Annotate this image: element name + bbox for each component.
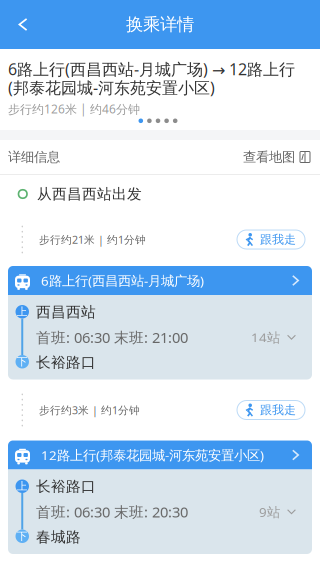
staticText: 12路上行(邦泰花园城-河东苑安置小区) — [41, 446, 264, 464]
button[interactable]: 14站 — [251, 328, 312, 346]
staticText: 步行约126米 | 约46分钟 — [8, 101, 140, 117]
staticText: 跟我走 — [260, 232, 296, 247]
button[interactable]: 跟我走 — [237, 400, 305, 419]
staticText: 6路上行(西昌西站-月城广场) — [41, 272, 204, 289]
staticText: 下 — [17, 355, 28, 368]
button[interactable]: 12路上行(邦泰花园城-河东苑安置小区) — [8, 440, 312, 469]
staticText: 跟我走 — [260, 403, 296, 417]
button[interactable]: 跟我走 — [237, 230, 305, 249]
button[interactable]: 查看地图 — [243, 149, 320, 165]
staticText: 详细信息 — [8, 149, 60, 165]
staticText: 步行约3米 | 约1分钟 — [39, 403, 140, 417]
button[interactable]: 9站 — [259, 503, 312, 521]
staticText: 上 — [17, 480, 28, 493]
staticText: 西昌西站 — [36, 303, 96, 321]
staticText: 首班: 06:30 末班: 21:00 — [36, 327, 188, 347]
staticText: 9站 — [259, 503, 280, 521]
staticText: 下 — [17, 530, 28, 543]
staticText: 查看地图 — [243, 149, 295, 165]
staticText: 6路上行(西昌西站-月城广场) → 12路上行 — [8, 58, 295, 80]
staticText: 长裕路口 — [36, 353, 96, 371]
staticText: 春城路 — [36, 528, 81, 546]
button[interactable]: 6路上行(西昌西站-月城广场) — [8, 266, 312, 295]
staticText: 14站 — [251, 328, 280, 346]
staticText: 从西昌西站出发 — [37, 185, 142, 203]
staticText: 首班: 06:30 末班: 20:30 — [36, 502, 188, 521]
staticText: 上 — [17, 305, 28, 318]
staticText: 步行约21米 | 约1分钟 — [39, 232, 146, 247]
staticText: 换乘详情 — [126, 14, 194, 35]
button[interactable]: 返回 — [0, 1, 46, 47]
staticText: (邦泰花园城-河东苑安置小区) — [8, 77, 215, 98]
staticText: 长裕路口 — [36, 477, 96, 495]
